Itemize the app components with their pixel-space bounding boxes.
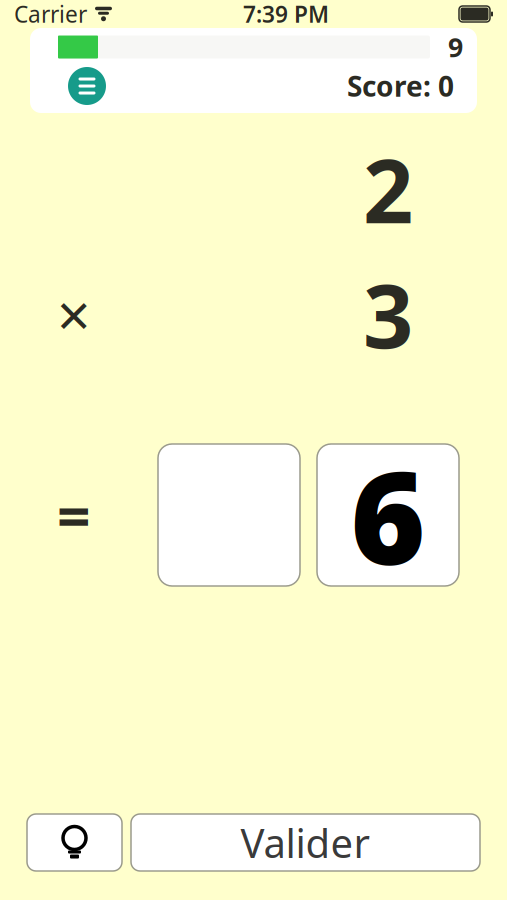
button[interactable]: Empty answer cell [158,444,300,586]
staticText: 6 [350,430,425,600]
staticText: 9 [448,29,463,65]
button[interactable]: Menu [68,67,106,105]
staticText: 2 [363,131,413,247]
staticText: = [57,476,91,554]
button[interactable]: Valider [131,814,480,871]
staticText: × [57,275,91,353]
staticText: 7:39 PM [243,0,329,29]
button[interactable]: Hint [27,814,122,871]
staticText: Score: 0 [347,67,454,105]
button[interactable]: Answer 6 [317,444,459,586]
staticText: Carrier [14,0,87,29]
staticText: 3 [363,256,413,372]
staticText: Valider [240,816,370,869]
